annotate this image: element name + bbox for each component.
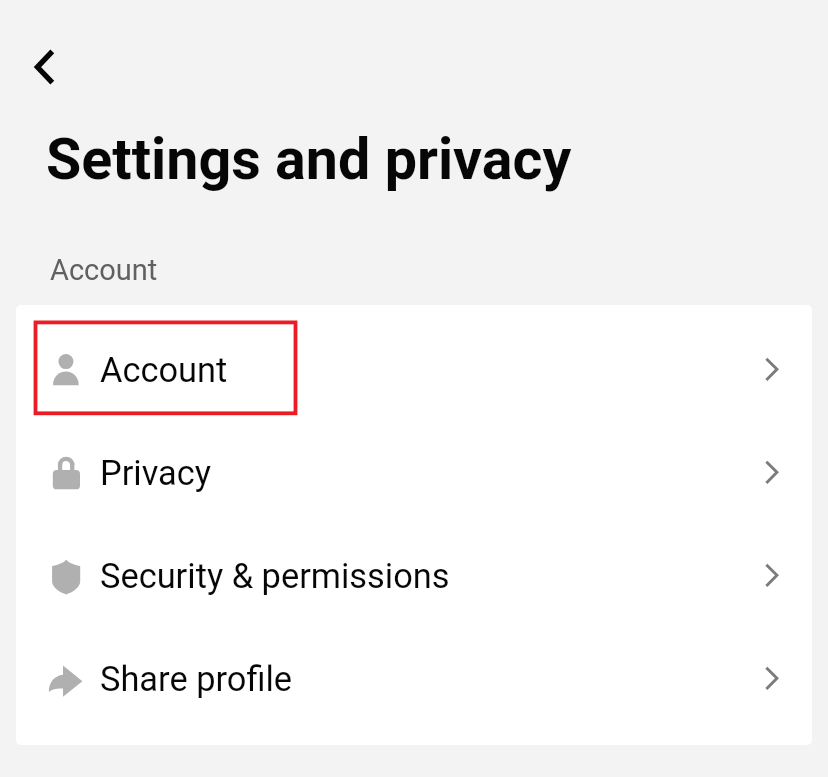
staticText: Account: [100, 350, 228, 390]
staticText: Security & permissions: [100, 556, 450, 596]
button[interactable]: Account: [16, 316, 812, 419]
staticText: Settings and privacy: [46, 126, 572, 193]
staticText: Share profile: [100, 659, 293, 699]
staticText: Privacy: [100, 453, 212, 493]
button[interactable]: Security & permissions: [16, 522, 812, 625]
button[interactable]: Back: [10, 43, 58, 91]
staticText: Account: [50, 253, 158, 287]
button[interactable]: Share profile: [16, 625, 812, 728]
button[interactable]: Privacy: [16, 419, 812, 522]
